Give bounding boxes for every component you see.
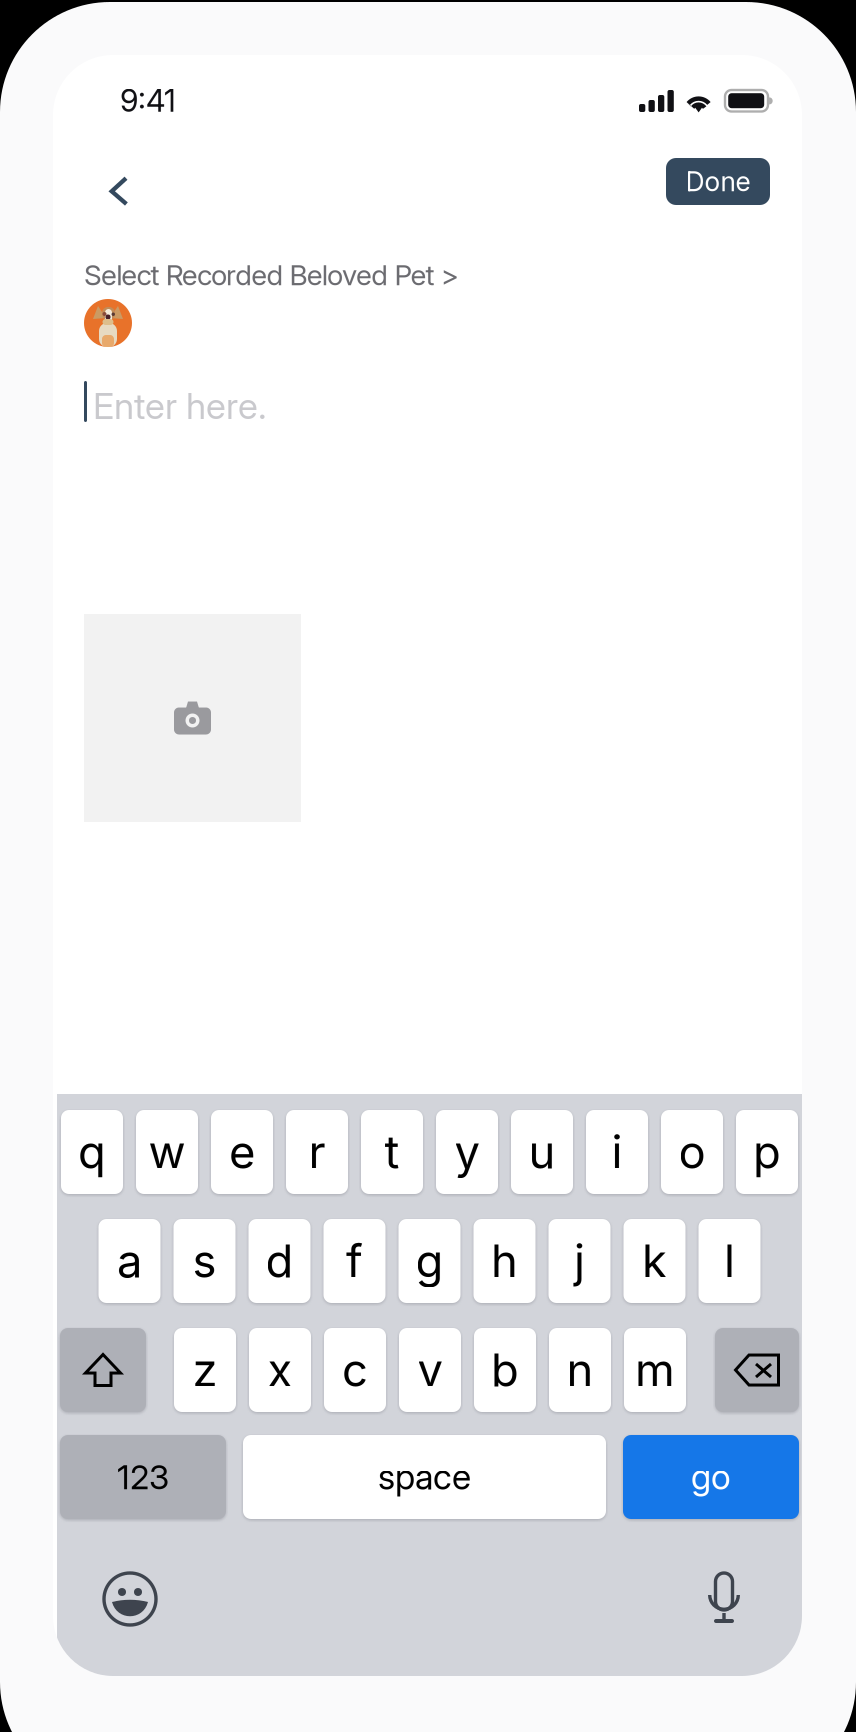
staticText: space bbox=[378, 1456, 471, 1498]
button[interactable]: q bbox=[61, 1110, 123, 1194]
staticText: s bbox=[192, 1234, 216, 1288]
staticText: x bbox=[267, 1343, 292, 1397]
button[interactable]: Emoji bbox=[104, 1573, 156, 1625]
staticText: y bbox=[454, 1125, 479, 1179]
staticText: Enter here. bbox=[93, 384, 267, 428]
staticText: h bbox=[491, 1234, 518, 1288]
button[interactable]: a bbox=[98, 1219, 160, 1303]
button[interactable]: u bbox=[511, 1110, 573, 1194]
staticText: Done bbox=[685, 165, 750, 198]
button[interactable]: 123 bbox=[60, 1435, 226, 1519]
button[interactable]: b bbox=[474, 1328, 536, 1412]
staticText: r bbox=[308, 1125, 325, 1179]
button[interactable]: o bbox=[661, 1110, 723, 1194]
staticText: f bbox=[346, 1234, 363, 1288]
button[interactable]: h bbox=[473, 1219, 535, 1303]
staticText: g bbox=[415, 1234, 443, 1288]
button[interactable]: c bbox=[324, 1328, 386, 1412]
staticText: o bbox=[678, 1125, 705, 1179]
staticText: a bbox=[117, 1234, 142, 1288]
staticText: Select Recorded Beloved Pet > bbox=[84, 258, 459, 292]
button[interactable]: i bbox=[586, 1110, 648, 1194]
staticText: w bbox=[148, 1125, 185, 1179]
button[interactable]: Delete bbox=[715, 1328, 799, 1412]
button[interactable]: y bbox=[436, 1110, 498, 1194]
staticText: u bbox=[528, 1125, 555, 1179]
staticText: p bbox=[753, 1125, 781, 1179]
staticText: j bbox=[574, 1234, 585, 1288]
button[interactable]: Selected pet bbox=[84, 299, 132, 347]
staticText: q bbox=[78, 1125, 106, 1179]
staticText: t bbox=[384, 1125, 399, 1179]
staticText: z bbox=[192, 1343, 217, 1397]
button[interactable]: j bbox=[548, 1219, 610, 1303]
button[interactable]: e bbox=[211, 1110, 273, 1194]
button[interactable]: m bbox=[624, 1328, 686, 1412]
button[interactable]: s bbox=[173, 1219, 235, 1303]
staticText: 9:41 bbox=[120, 82, 176, 119]
button[interactable]: v bbox=[399, 1328, 461, 1412]
staticText: go bbox=[691, 1456, 731, 1498]
staticText: l bbox=[724, 1234, 735, 1288]
button[interactable]: p bbox=[736, 1110, 798, 1194]
button[interactable]: g bbox=[398, 1219, 460, 1303]
button[interactable]: w bbox=[136, 1110, 198, 1194]
button[interactable]: f bbox=[323, 1219, 385, 1303]
button[interactable]: n bbox=[549, 1328, 611, 1412]
staticText: n bbox=[566, 1343, 593, 1397]
button[interactable]: Back bbox=[93, 166, 153, 220]
staticText: 123 bbox=[117, 1457, 169, 1497]
button[interactable]: l bbox=[698, 1219, 760, 1303]
button[interactable]: r bbox=[286, 1110, 348, 1194]
button[interactable]: x bbox=[249, 1328, 311, 1412]
staticText: i bbox=[611, 1125, 622, 1179]
button[interactable]: k bbox=[623, 1219, 685, 1303]
staticText: m bbox=[635, 1343, 675, 1397]
staticText: d bbox=[265, 1234, 293, 1288]
staticText: k bbox=[642, 1234, 667, 1288]
button[interactable]: space bbox=[243, 1435, 606, 1519]
button[interactable]: Add photo bbox=[84, 614, 301, 822]
button[interactable]: d bbox=[248, 1219, 310, 1303]
button[interactable]: t bbox=[361, 1110, 423, 1194]
staticText: b bbox=[491, 1343, 519, 1397]
button[interactable]: Shift bbox=[60, 1328, 146, 1412]
button[interactable]: Done bbox=[666, 158, 770, 205]
button[interactable]: z bbox=[174, 1328, 236, 1412]
button[interactable]: Select Recorded Beloved Pet > bbox=[84, 258, 504, 288]
staticText: v bbox=[417, 1343, 442, 1397]
staticText: e bbox=[229, 1125, 255, 1179]
staticText: c bbox=[342, 1343, 368, 1397]
button[interactable]: go bbox=[623, 1435, 799, 1519]
button[interactable]: Dictate bbox=[708, 1573, 740, 1625]
